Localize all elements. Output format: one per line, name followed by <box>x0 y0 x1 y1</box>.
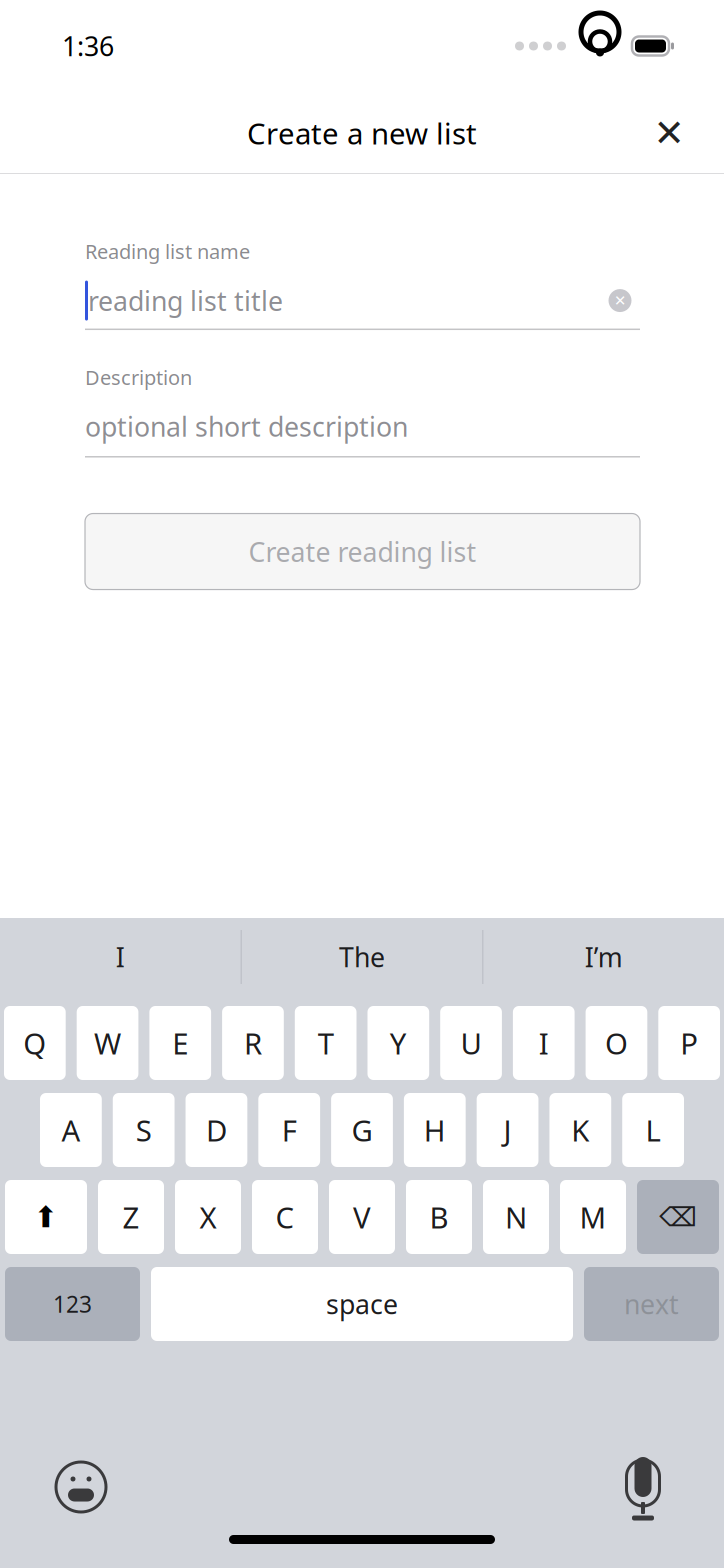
staticText: I’m <box>585 939 623 975</box>
button[interactable]: I <box>0 925 241 989</box>
staticText: J <box>504 1110 512 1149</box>
staticText: C <box>275 1197 294 1236</box>
button[interactable]: Dictate <box>607 1451 679 1523</box>
staticText: T <box>318 1023 334 1062</box>
staticText: I <box>116 939 125 975</box>
staticText: Y <box>390 1023 407 1062</box>
button[interactable]: S <box>113 1093 175 1167</box>
staticText: E <box>172 1023 188 1062</box>
staticText: O <box>605 1023 628 1062</box>
button[interactable]: The <box>242 925 482 989</box>
button[interactable]: W <box>77 1006 138 1080</box>
button[interactable]: Q <box>4 1006 66 1080</box>
button[interactable]: Create reading list <box>85 513 640 589</box>
staticText: L <box>646 1110 661 1149</box>
staticText: Description <box>85 364 192 391</box>
staticText: S <box>136 1110 152 1149</box>
staticText: space <box>326 1286 398 1322</box>
staticText: Create a new list <box>247 113 477 152</box>
staticText: F <box>282 1110 297 1149</box>
staticText: R <box>244 1023 262 1062</box>
staticText: optional short description <box>85 409 408 444</box>
staticText: K <box>571 1110 589 1149</box>
staticText: Reading list name <box>85 238 250 265</box>
staticText: The <box>339 939 385 975</box>
button[interactable]: E <box>149 1006 211 1080</box>
staticText: N <box>505 1197 527 1236</box>
staticText: A <box>61 1110 80 1149</box>
staticText: W <box>94 1023 121 1062</box>
staticText: 123 <box>53 1289 92 1319</box>
staticText: M <box>579 1197 606 1236</box>
button[interactable]: H <box>404 1093 466 1167</box>
staticText: U <box>461 1023 482 1062</box>
button[interactable]: G <box>331 1093 393 1167</box>
staticText: P <box>680 1023 698 1062</box>
button[interactable]: R <box>222 1006 284 1080</box>
button[interactable]: O <box>586 1006 647 1080</box>
button[interactable]: next <box>584 1267 719 1341</box>
staticText: V <box>353 1197 371 1236</box>
staticText: Create reading list <box>248 534 476 569</box>
button[interactable]: Delete <box>637 1180 719 1254</box>
button[interactable]: 123 <box>5 1267 140 1341</box>
button[interactable]: U <box>440 1006 502 1080</box>
button[interactable]: T <box>295 1006 356 1080</box>
staticText: next <box>624 1286 679 1322</box>
button[interactable]: Clear text <box>600 281 640 321</box>
button[interactable]: I <box>513 1006 575 1080</box>
staticText: Z <box>122 1197 139 1236</box>
staticText: G <box>351 1110 372 1149</box>
staticText: H <box>424 1110 446 1149</box>
button[interactable]: space <box>151 1267 573 1341</box>
button[interactable]: L <box>622 1093 684 1167</box>
button[interactable]: N <box>483 1180 549 1254</box>
button[interactable]: J <box>477 1093 538 1167</box>
button[interactable]: P <box>658 1006 720 1080</box>
button[interactable]: Close <box>634 98 704 168</box>
staticText: D <box>206 1110 227 1149</box>
button[interactable]: Z <box>98 1180 164 1254</box>
staticText: Q <box>23 1023 46 1062</box>
button[interactable]: X <box>175 1180 241 1254</box>
staticText: B <box>429 1197 448 1236</box>
button[interactable]: M <box>560 1180 626 1254</box>
button[interactable]: A <box>40 1093 102 1167</box>
staticText: reading list title <box>88 283 283 318</box>
button[interactable]: Emoji keyboard <box>45 1451 117 1523</box>
button[interactable]: K <box>549 1093 611 1167</box>
button[interactable]: D <box>186 1093 247 1167</box>
button[interactable]: B <box>406 1180 472 1254</box>
button[interactable]: C <box>252 1180 318 1254</box>
staticText: X <box>199 1197 216 1236</box>
staticText: ⬆ <box>33 1200 58 1234</box>
button[interactable]: Y <box>367 1006 429 1080</box>
button[interactable]: F <box>258 1093 320 1167</box>
button[interactable]: Shift <box>5 1180 87 1254</box>
button[interactable]: I’m <box>483 925 724 989</box>
staticText: ✕ <box>614 292 626 309</box>
staticText: ⌫ <box>659 1202 697 1232</box>
staticText: 1:36 <box>62 28 114 64</box>
button[interactable]: V <box>329 1180 395 1254</box>
staticText: ✕ <box>653 112 684 154</box>
staticText: I <box>539 1023 549 1062</box>
